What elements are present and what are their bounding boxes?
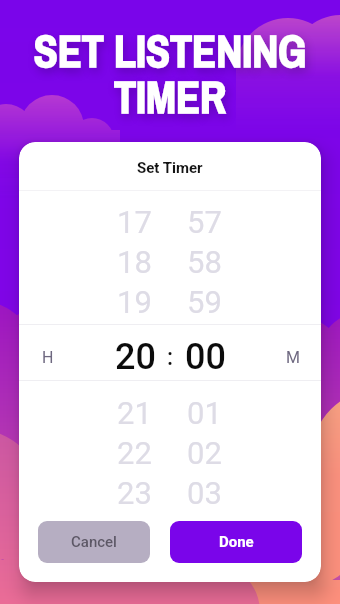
staticText: : xyxy=(167,344,174,371)
staticText: SET LISTENING xyxy=(0,21,340,80)
button[interactable]: Done xyxy=(170,521,302,563)
button[interactable]: 18 xyxy=(19,242,321,282)
staticText: 18 xyxy=(117,244,152,280)
button[interactable]: 22 xyxy=(19,433,321,473)
staticText: TIMER xyxy=(0,67,340,126)
staticText: 17 xyxy=(117,204,152,240)
staticText: 59 xyxy=(187,284,222,320)
staticText: 22 xyxy=(117,435,152,471)
staticText: 00 xyxy=(185,336,226,378)
staticText: 57 xyxy=(187,204,222,240)
staticText: 20 xyxy=(115,336,156,378)
staticText: 19 xyxy=(117,284,152,320)
button[interactable]: 21 xyxy=(19,393,321,433)
staticText: Cancel xyxy=(71,533,117,551)
staticText: H xyxy=(42,348,54,367)
button[interactable]: 17 xyxy=(19,202,321,242)
button[interactable]: 19 xyxy=(19,282,321,322)
staticText: 01 xyxy=(187,395,222,431)
button[interactable]: Cancel xyxy=(38,521,150,563)
staticText: 03 xyxy=(187,475,222,511)
staticText: M xyxy=(286,348,300,367)
staticText: 21 xyxy=(117,395,152,431)
staticText: 02 xyxy=(187,435,222,471)
staticText: Set Timer xyxy=(137,159,203,177)
button[interactable]: 23 xyxy=(19,473,321,513)
staticText: 58 xyxy=(187,244,222,280)
staticText: 23 xyxy=(117,475,152,511)
staticText: Done xyxy=(219,533,254,551)
